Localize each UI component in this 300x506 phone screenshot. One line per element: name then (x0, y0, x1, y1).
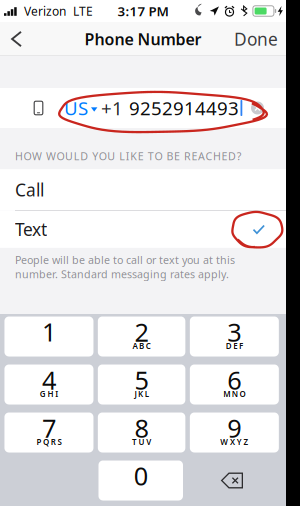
button[interactable]: 0 (98, 460, 183, 500)
button[interactable]: 3 (190, 316, 279, 356)
staticText: V (146, 436, 151, 447)
staticText: 6 (227, 363, 241, 397)
button[interactable]: Delete (192, 460, 272, 500)
staticText: K (138, 388, 143, 399)
staticText: 3 (227, 315, 241, 349)
staticText: P (36, 436, 41, 447)
button[interactable]: 5 (98, 364, 185, 404)
button[interactable]: Clear text (251, 101, 264, 114)
staticText: 2 (135, 315, 149, 349)
staticText: People will be able to call or text you … (15, 253, 235, 267)
staticText: Z (243, 436, 248, 447)
staticText: C (146, 340, 151, 351)
button[interactable]: 7 (4, 412, 93, 452)
staticText: 9252914493 (129, 96, 239, 120)
staticText: B (139, 340, 144, 351)
staticText: 4 (42, 363, 56, 397)
button[interactable]: 4 (4, 364, 93, 404)
staticText: R (51, 436, 56, 447)
staticText: X (230, 436, 235, 447)
button[interactable]: 9 (190, 412, 279, 452)
staticText: LTE (73, 3, 93, 19)
staticText: 9 (227, 411, 241, 445)
staticText: Verizon (24, 3, 66, 19)
staticText: I (55, 388, 58, 399)
staticText: S (57, 436, 61, 447)
staticText: Q (43, 436, 49, 447)
button[interactable]: Back (0, 22, 33, 55)
staticText: H (47, 388, 53, 399)
staticText: 1 (42, 315, 56, 348)
staticText: Y (237, 436, 242, 447)
staticText: J (134, 388, 136, 399)
button[interactable]: Call (0, 169, 286, 210)
staticText: number. Standard messaging rates apply. (15, 267, 229, 281)
staticText: G (40, 388, 46, 399)
button[interactable]: Text (0, 211, 286, 248)
button[interactable]: 6 (190, 364, 279, 404)
staticText: 8 (135, 411, 149, 445)
staticText: W (220, 436, 228, 447)
staticText: HOW WOULD YOU LIKE TO BE REACHED? (15, 149, 242, 163)
staticText: 0 (134, 459, 148, 492)
staticText: 5 (135, 363, 149, 397)
button[interactable]: US (64, 93, 97, 123)
staticText: E (233, 340, 237, 351)
staticText: F (239, 340, 243, 351)
staticText: D (226, 340, 232, 351)
staticText: A (132, 340, 137, 351)
staticText: U (139, 436, 145, 447)
staticText: L (145, 388, 149, 399)
button[interactable]: 1 (4, 316, 93, 356)
staticText: Text (15, 218, 47, 241)
staticText: M (223, 388, 230, 399)
staticText: T (132, 436, 137, 447)
button[interactable]: Done (234, 22, 278, 55)
staticText: 7 (42, 411, 56, 445)
staticText: Call (15, 178, 44, 201)
button[interactable]: 8 (98, 412, 185, 452)
staticText: Phone Number (84, 28, 201, 50)
staticText: +1 (101, 96, 123, 120)
button[interactable]: 2 (98, 316, 185, 356)
staticText: O (239, 388, 245, 399)
staticText: 3:17 PM (117, 2, 168, 20)
staticText: Done (234, 27, 278, 50)
staticText: US (64, 96, 88, 120)
staticText: N (232, 388, 238, 399)
